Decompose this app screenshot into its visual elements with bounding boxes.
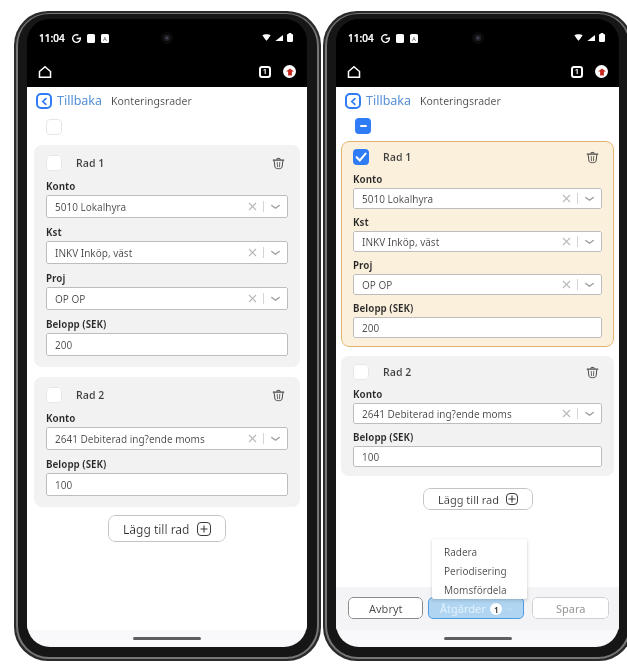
button[interactable]: Momsfördela (432, 580, 527, 599)
staticText: 100 (55, 478, 73, 492)
button[interactable]: Tabs (571, 66, 583, 78)
staticText: Konto (353, 173, 383, 186)
staticText: Belopp (SEK) (46, 318, 107, 331)
staticText: OP OP (55, 292, 86, 306)
staticText: Konteringsrader (420, 94, 501, 108)
button[interactable]: Lägg till rad (423, 488, 533, 510)
staticText: Lägg till rad (438, 492, 499, 507)
staticText: Spara (556, 601, 586, 616)
staticText: Kst (46, 226, 62, 239)
staticText: Rad 2 (383, 365, 412, 379)
button[interactable]: 5010 Lokalhyra (46, 195, 288, 218)
staticText: Konteringsrader (111, 94, 192, 108)
button[interactable]: 200 (353, 317, 602, 338)
button[interactable]: Lägg till rad (108, 515, 226, 542)
button[interactable]: Åtgärder (428, 597, 524, 619)
staticText: Konto (46, 412, 76, 425)
staticText: Rad 1 (76, 156, 105, 170)
staticText: Radera (444, 545, 478, 559)
button[interactable]: Radera (432, 542, 527, 561)
button[interactable]: Select (353, 364, 369, 380)
staticText: 200 (362, 321, 380, 335)
button[interactable]: Delete row (582, 147, 602, 167)
button[interactable]: 2641 Debiterad ing?ende moms (46, 427, 288, 450)
button[interactable]: 200 (46, 333, 288, 356)
staticText: Åtgärder (440, 601, 486, 616)
staticText: Rad 2 (76, 388, 105, 402)
button[interactable]: Spara (532, 597, 609, 619)
staticText: A (412, 35, 416, 43)
staticText: Tillbaka (366, 92, 412, 109)
staticText: Proj (46, 272, 66, 285)
button[interactable]: Avbryt (348, 597, 423, 619)
staticText: Proj (353, 259, 373, 272)
staticText: 5010 Lokalhyra (55, 200, 127, 214)
button[interactable]: OP OP (353, 274, 602, 295)
button[interactable]: Tillbaka (36, 90, 103, 111)
staticText: Avbryt (369, 601, 403, 616)
staticText: 2641 Debiterad ing?ende moms (362, 407, 512, 421)
staticText: Belopp (SEK) (46, 458, 107, 471)
staticText: 5010 Lokalhyra (362, 192, 434, 206)
staticText: 200 (55, 338, 73, 352)
staticText: Momsfördela (444, 583, 507, 597)
staticText: Rad 1 (383, 150, 412, 164)
button[interactable]: Home (34, 61, 56, 83)
staticText: Konto (46, 180, 76, 193)
button[interactable]: Select (353, 149, 369, 165)
staticText: 100 (362, 450, 380, 464)
staticText: Belopp (SEK) (353, 431, 414, 444)
staticText: Tillbaka (57, 92, 103, 109)
staticText: 1 (494, 604, 499, 615)
button[interactable]: Select (355, 118, 371, 134)
button[interactable]: Account (595, 65, 608, 78)
button[interactable]: Home (343, 61, 365, 83)
button[interactable]: Account (283, 65, 296, 78)
button[interactable]: Tillbaka (345, 90, 412, 111)
button[interactable]: 100 (46, 473, 288, 496)
button[interactable]: 2641 Debiterad ing?ende moms (353, 403, 602, 424)
staticText: A (103, 35, 107, 43)
button[interactable]: Select (46, 155, 62, 171)
button[interactable]: 5010 Lokalhyra (353, 188, 602, 209)
button[interactable]: Tabs (259, 66, 271, 78)
staticText: 11:04 (39, 31, 65, 45)
button[interactable]: INKV Inköp, väst (353, 231, 602, 252)
staticText: 1 (575, 67, 580, 77)
button[interactable]: Select (46, 387, 62, 403)
staticText: OP OP (362, 278, 393, 292)
staticText: Belopp (SEK) (353, 302, 414, 315)
staticText: Periodisering (444, 564, 507, 578)
staticText: Lägg till rad (123, 521, 190, 537)
button[interactable]: INKV Inköp, väst (46, 241, 288, 264)
button[interactable]: 100 (353, 446, 602, 467)
staticText: Kst (353, 216, 369, 229)
staticText: INKV Inköp, väst (55, 246, 133, 260)
button[interactable]: Periodisering (432, 561, 527, 580)
staticText: 1 (263, 67, 268, 77)
staticText: 2641 Debiterad ing?ende moms (55, 432, 205, 446)
button[interactable]: Delete row (582, 362, 602, 382)
staticText: 11:04 (348, 31, 374, 45)
button[interactable]: Select (46, 119, 62, 135)
button[interactable]: OP OP (46, 287, 288, 310)
button[interactable]: Delete row (268, 153, 288, 173)
staticText: Konto (353, 388, 383, 401)
button[interactable]: Delete row (268, 385, 288, 405)
staticText: INKV Inköp, väst (362, 235, 440, 249)
